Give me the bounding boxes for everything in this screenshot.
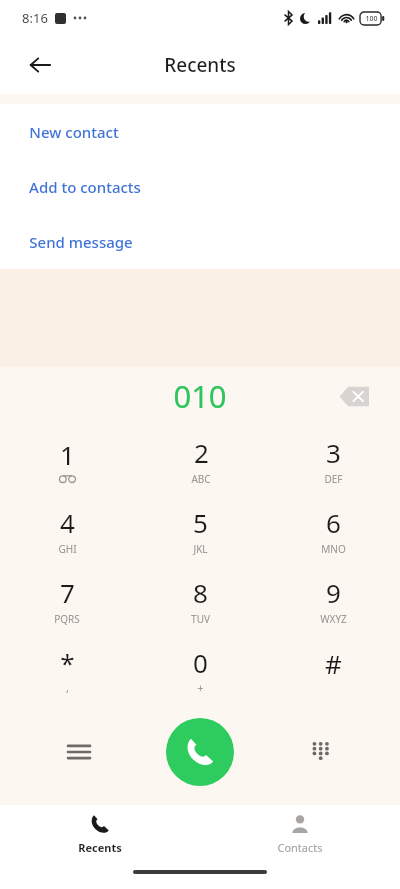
button[interactable]: 8 (134, 565, 267, 635)
staticText: 3 (326, 435, 341, 470)
staticText: WXYZ (320, 612, 347, 626)
button[interactable]: # (267, 635, 400, 705)
staticText: 7 (60, 575, 75, 610)
button[interactable]: 6 (267, 495, 400, 565)
staticText: MNO (321, 542, 346, 556)
button[interactable]: Menu (56, 729, 102, 775)
staticText: 0 (193, 645, 208, 680)
staticText: New contact (29, 122, 119, 142)
staticText: 4 (60, 505, 75, 540)
staticText: 2 (194, 435, 209, 470)
button[interactable]: Call (166, 718, 234, 786)
button[interactable]: 2 (134, 425, 267, 495)
staticText: GHI (58, 542, 77, 556)
staticText: 8 (193, 575, 208, 610)
staticText: 010 (173, 375, 227, 417)
button[interactable]: 4 (0, 495, 134, 565)
staticText: + (197, 680, 204, 695)
button[interactable]: Dialpad (298, 729, 344, 775)
staticText: JKL (193, 542, 208, 556)
staticText: 6 (326, 505, 341, 540)
staticText: 5 (193, 505, 208, 540)
button[interactable]: 5 (134, 495, 267, 565)
button[interactable]: 7 (0, 565, 134, 635)
staticText: 8:16 (22, 9, 48, 27)
staticText: # (325, 646, 342, 681)
button[interactable]: New contact (0, 104, 400, 159)
button[interactable]: Recents (0, 805, 200, 863)
button[interactable]: Send message (0, 214, 400, 269)
staticText: DEF (324, 472, 343, 486)
button[interactable]: 3 (267, 425, 400, 495)
staticText: ABC (191, 472, 211, 486)
staticText: TUV (191, 612, 210, 626)
staticText: 1 (60, 437, 75, 472)
staticText: Contacts (277, 840, 323, 855)
staticText: Send message (29, 232, 133, 252)
staticText: * (60, 645, 75, 680)
button[interactable]: * (0, 635, 134, 705)
staticText: , (66, 680, 69, 695)
button[interactable]: 1 (0, 425, 134, 495)
staticText: 100 (365, 14, 378, 24)
staticText: Recents (164, 52, 236, 78)
button[interactable]: Add to contacts (0, 159, 400, 214)
button[interactable]: Backspace (332, 374, 376, 418)
staticText: Recents (78, 840, 122, 855)
staticText: 9 (326, 575, 341, 610)
button[interactable]: 9 (267, 565, 400, 635)
button[interactable]: Contacts (200, 805, 400, 863)
button[interactable]: Back (14, 39, 66, 91)
staticText: PQRS (54, 612, 80, 626)
button[interactable]: 0 (134, 635, 267, 705)
staticText: Add to contacts (29, 177, 141, 197)
